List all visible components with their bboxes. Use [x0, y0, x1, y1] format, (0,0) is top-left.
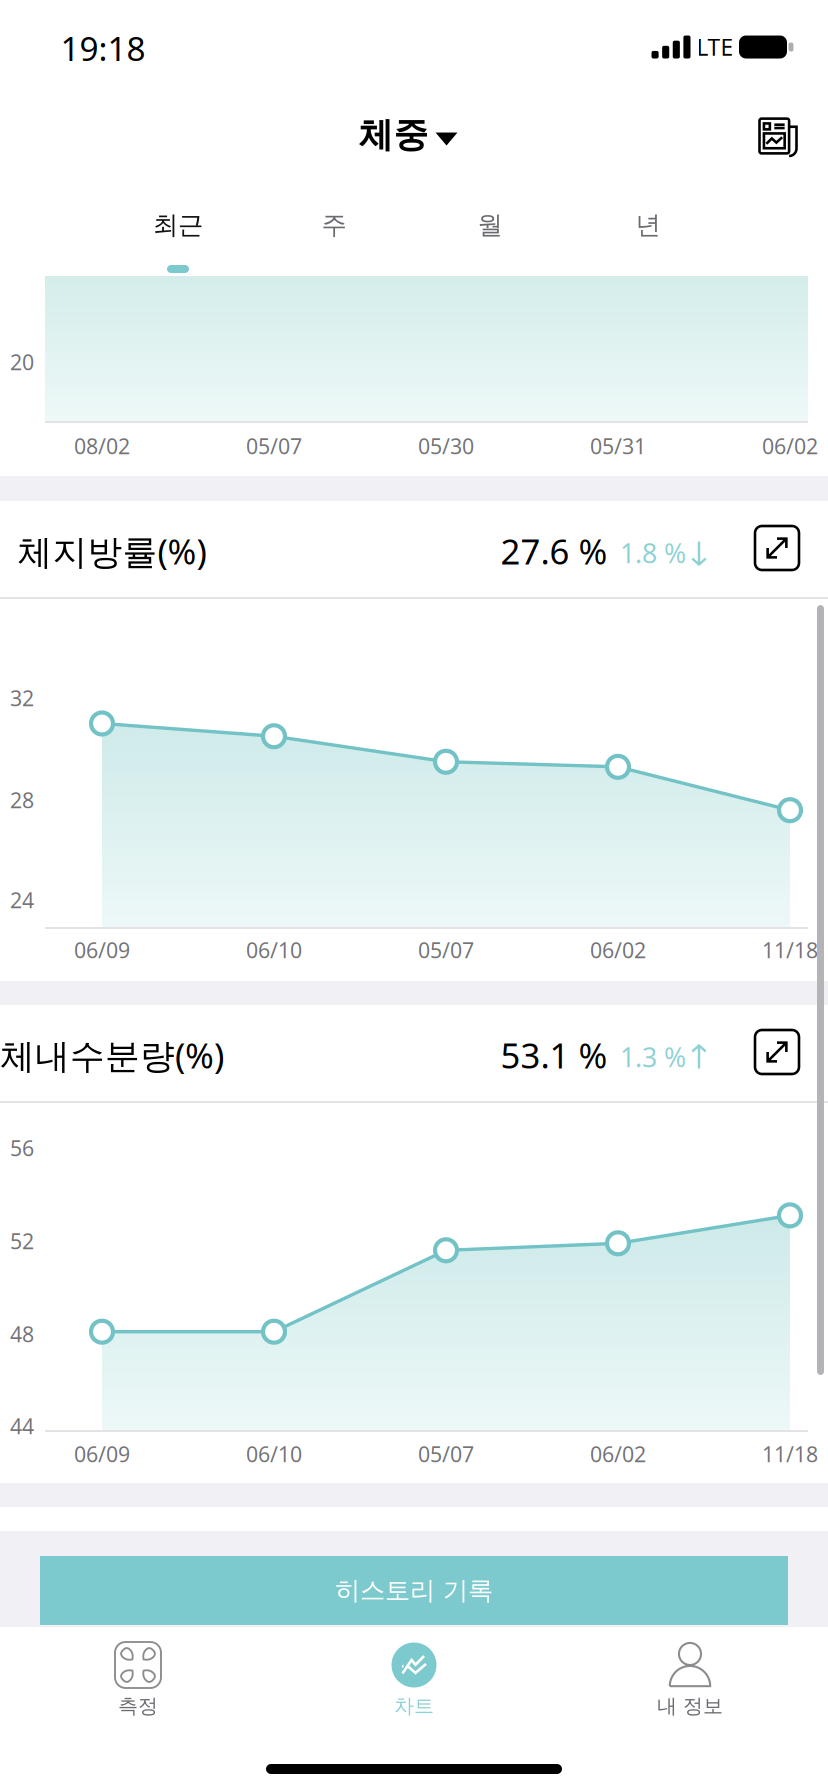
staticText: 48	[10, 1320, 34, 1348]
staticText: 52	[10, 1227, 34, 1255]
staticText: 28	[10, 786, 34, 814]
staticText: 1.8 %	[620, 535, 686, 571]
button[interactable]: 측정	[46, 1627, 230, 1737]
staticText: 20	[10, 348, 34, 376]
button[interactable]: 월	[412, 180, 568, 270]
staticText: 05/07	[246, 432, 302, 460]
button[interactable]: 최근	[100, 180, 256, 270]
staticText: 27.6 %	[500, 528, 607, 574]
staticText: 차트	[394, 1694, 434, 1718]
staticText: 년	[635, 209, 660, 240]
staticText: 32	[10, 684, 34, 712]
staticText: 체중	[358, 114, 428, 156]
staticText: 06/02	[590, 936, 646, 964]
staticText: 24	[10, 886, 34, 914]
staticText: 06/10	[246, 1440, 302, 1468]
button[interactable]: 히스토리 기록	[40, 1556, 788, 1625]
button[interactable]: 주	[256, 180, 412, 270]
staticText: 최근	[153, 209, 203, 240]
button[interactable]: 체중	[342, 100, 473, 170]
staticText: 19:18	[60, 26, 145, 70]
staticText: 11/18	[762, 1440, 818, 1468]
staticText: 05/07	[418, 1440, 474, 1468]
staticText: 56	[10, 1134, 34, 1162]
staticText: 내 정보	[657, 1694, 723, 1718]
staticText: 53.1 %	[500, 1032, 607, 1078]
staticText: 측정	[118, 1694, 158, 1718]
staticText: 주	[321, 209, 346, 240]
staticText: 06/10	[246, 936, 302, 964]
staticText: 06/02	[762, 432, 818, 460]
staticText: 1.3 %	[620, 1039, 686, 1075]
staticText: 05/07	[418, 936, 474, 964]
staticText: 05/30	[418, 432, 474, 460]
staticText: 체지방률(%)	[17, 528, 206, 574]
button[interactable]: 내 정보	[598, 1627, 782, 1737]
staticText: 05/31	[590, 432, 646, 460]
staticText: 06/09	[74, 936, 130, 964]
staticText: 08/02	[74, 432, 130, 460]
staticText: LTE	[696, 32, 733, 62]
staticText: 월	[477, 209, 502, 240]
staticText: 히스토리 기록	[335, 1575, 493, 1606]
staticText: 06/02	[590, 1440, 646, 1468]
button[interactable]: Expand 체지방률(%)	[755, 526, 799, 570]
staticText: 44	[10, 1412, 34, 1440]
staticText: 11/18	[762, 936, 818, 964]
staticText: 체내수분량(%)	[0, 1032, 224, 1078]
button[interactable]: Expand 체내수분량(%)	[755, 1030, 799, 1074]
button[interactable]: 년	[570, 180, 726, 270]
button[interactable]: Report	[745, 103, 810, 168]
staticText: 06/09	[74, 1440, 130, 1468]
button[interactable]: 차트	[322, 1627, 506, 1737]
